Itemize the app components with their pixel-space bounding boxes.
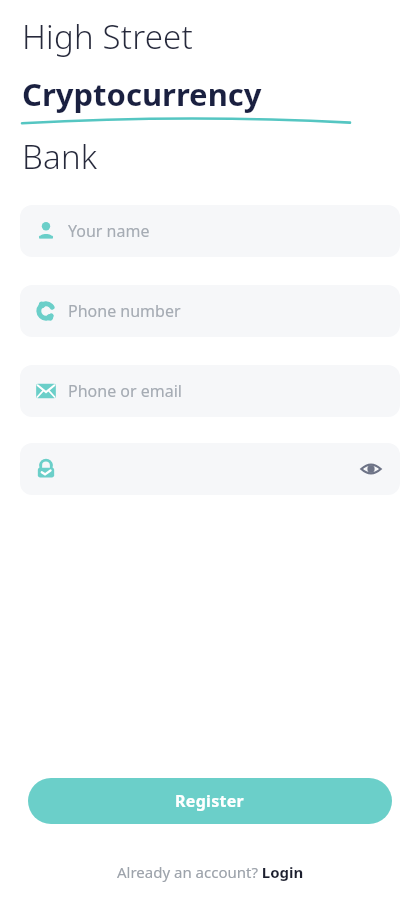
button[interactable]: Already an account? Login xyxy=(117,862,304,882)
button[interactable]: Phone or email xyxy=(20,365,400,417)
button[interactable]: Register xyxy=(28,778,392,824)
staticText: Phone number xyxy=(68,300,181,322)
staticText: Already an account? Login xyxy=(117,862,304,882)
staticText: High Street xyxy=(22,14,193,59)
staticText: Phone or email xyxy=(68,380,182,402)
button[interactable]: Phone number xyxy=(20,285,400,337)
staticText: Your name xyxy=(68,220,150,242)
button[interactable]: Your name xyxy=(20,205,400,257)
staticText: Bank xyxy=(22,134,98,179)
staticText: Cryptocurrency xyxy=(22,73,262,115)
button[interactable]: Show password xyxy=(20,443,400,495)
staticText: Register xyxy=(175,790,245,812)
button[interactable]: Show password xyxy=(358,456,384,482)
